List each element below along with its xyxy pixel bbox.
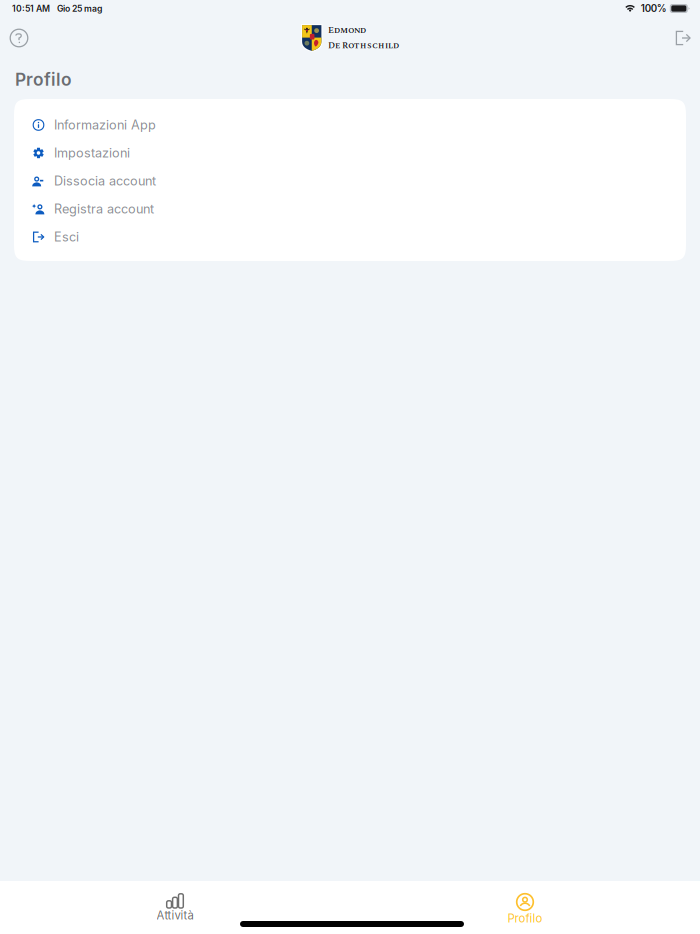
- staticText: Gio 25 mag: [57, 3, 102, 14]
- button[interactable]: Esci: [14, 223, 686, 251]
- button[interactable]: Profilo: [350, 881, 700, 934]
- button[interactable]: Help: [4, 23, 34, 53]
- button[interactable]: Dissocia account: [14, 167, 686, 195]
- button[interactable]: Impostazioni: [14, 139, 686, 167]
- staticText: Profilo: [507, 911, 542, 925]
- staticText: Edmond: [328, 24, 366, 37]
- staticText: Informazioni App: [54, 117, 156, 133]
- button[interactable]: Informazioni App: [14, 111, 686, 139]
- button[interactable]: Log out: [668, 23, 698, 53]
- button[interactable]: Attività: [0, 881, 350, 934]
- staticText: Attività: [156, 908, 193, 922]
- staticText: 10:51 AM: [12, 3, 50, 14]
- staticText: 100%: [641, 3, 667, 14]
- staticText: Dissocia account: [54, 173, 156, 189]
- staticText: Registra account: [54, 201, 154, 217]
- staticText: Esci: [54, 229, 79, 245]
- button[interactable]: Registra account: [14, 195, 686, 223]
- staticText: Impostazioni: [54, 145, 130, 161]
- staticText: Profilo: [15, 69, 72, 90]
- staticText: De Rothschild: [328, 39, 399, 52]
